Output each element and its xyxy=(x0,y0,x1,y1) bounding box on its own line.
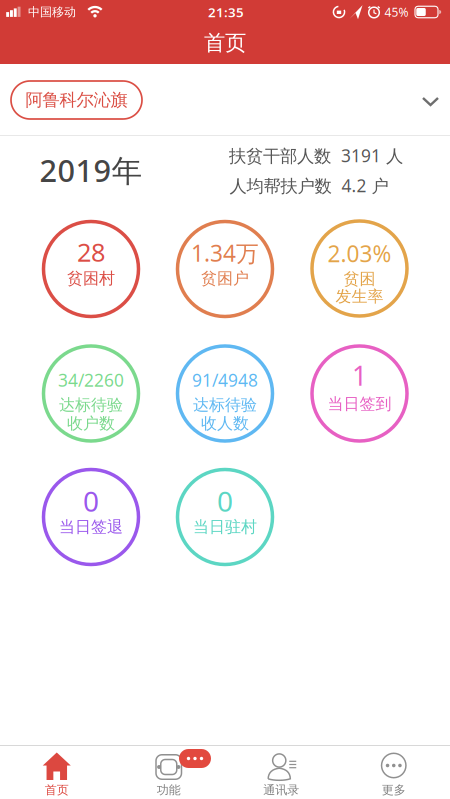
staticText: 贫困户 xyxy=(201,269,249,288)
staticText: 当日签到 xyxy=(327,394,391,414)
staticText: 贫困村 xyxy=(67,269,115,288)
staticText: 更多 xyxy=(382,783,406,797)
staticText: 91/4948 xyxy=(192,368,258,391)
staticText: 收人数 xyxy=(201,414,249,433)
staticText: 阿鲁科尔沁旗 xyxy=(25,89,127,111)
staticText: 2019年 xyxy=(39,150,142,190)
staticText: 当日签退 xyxy=(59,517,123,537)
staticText: 扶贫干部人数 3191 人 xyxy=(229,144,403,167)
staticText: 达标待验 xyxy=(193,395,257,415)
staticText: 1 xyxy=(352,358,367,393)
staticText: 人均帮扶户数 4.2 户 xyxy=(229,174,388,197)
staticText: 28 xyxy=(77,235,105,269)
staticText: 首页 xyxy=(204,30,246,56)
staticText: 达标待验 xyxy=(59,395,123,415)
staticText: 贫困 xyxy=(343,269,375,289)
button[interactable]: 展开 xyxy=(420,95,440,108)
button[interactable]: 首页 xyxy=(0,745,112,799)
staticText: 45% xyxy=(384,4,408,20)
staticText: 1.34万 xyxy=(191,238,259,268)
button[interactable]: 功能 xyxy=(113,745,225,799)
button[interactable]: 阿鲁科尔沁旗 xyxy=(11,81,142,119)
staticText: 功能 xyxy=(157,783,181,797)
staticText: 中国移动 xyxy=(28,5,76,19)
staticText: 21:35 xyxy=(208,3,244,21)
staticText: 收户数 xyxy=(67,414,115,433)
staticText: 发生率 xyxy=(335,287,383,306)
button[interactable]: 更多 xyxy=(338,745,450,799)
staticText: 34/2260 xyxy=(58,368,124,391)
button[interactable]: 通讯录 xyxy=(225,745,337,799)
staticText: 2.03% xyxy=(327,238,391,268)
staticText: 首页 xyxy=(45,783,69,797)
staticText: 0 xyxy=(83,482,99,520)
staticText: 当日驻村 xyxy=(193,517,257,537)
staticText: 通讯录 xyxy=(263,783,299,797)
staticText: 0 xyxy=(217,482,233,520)
